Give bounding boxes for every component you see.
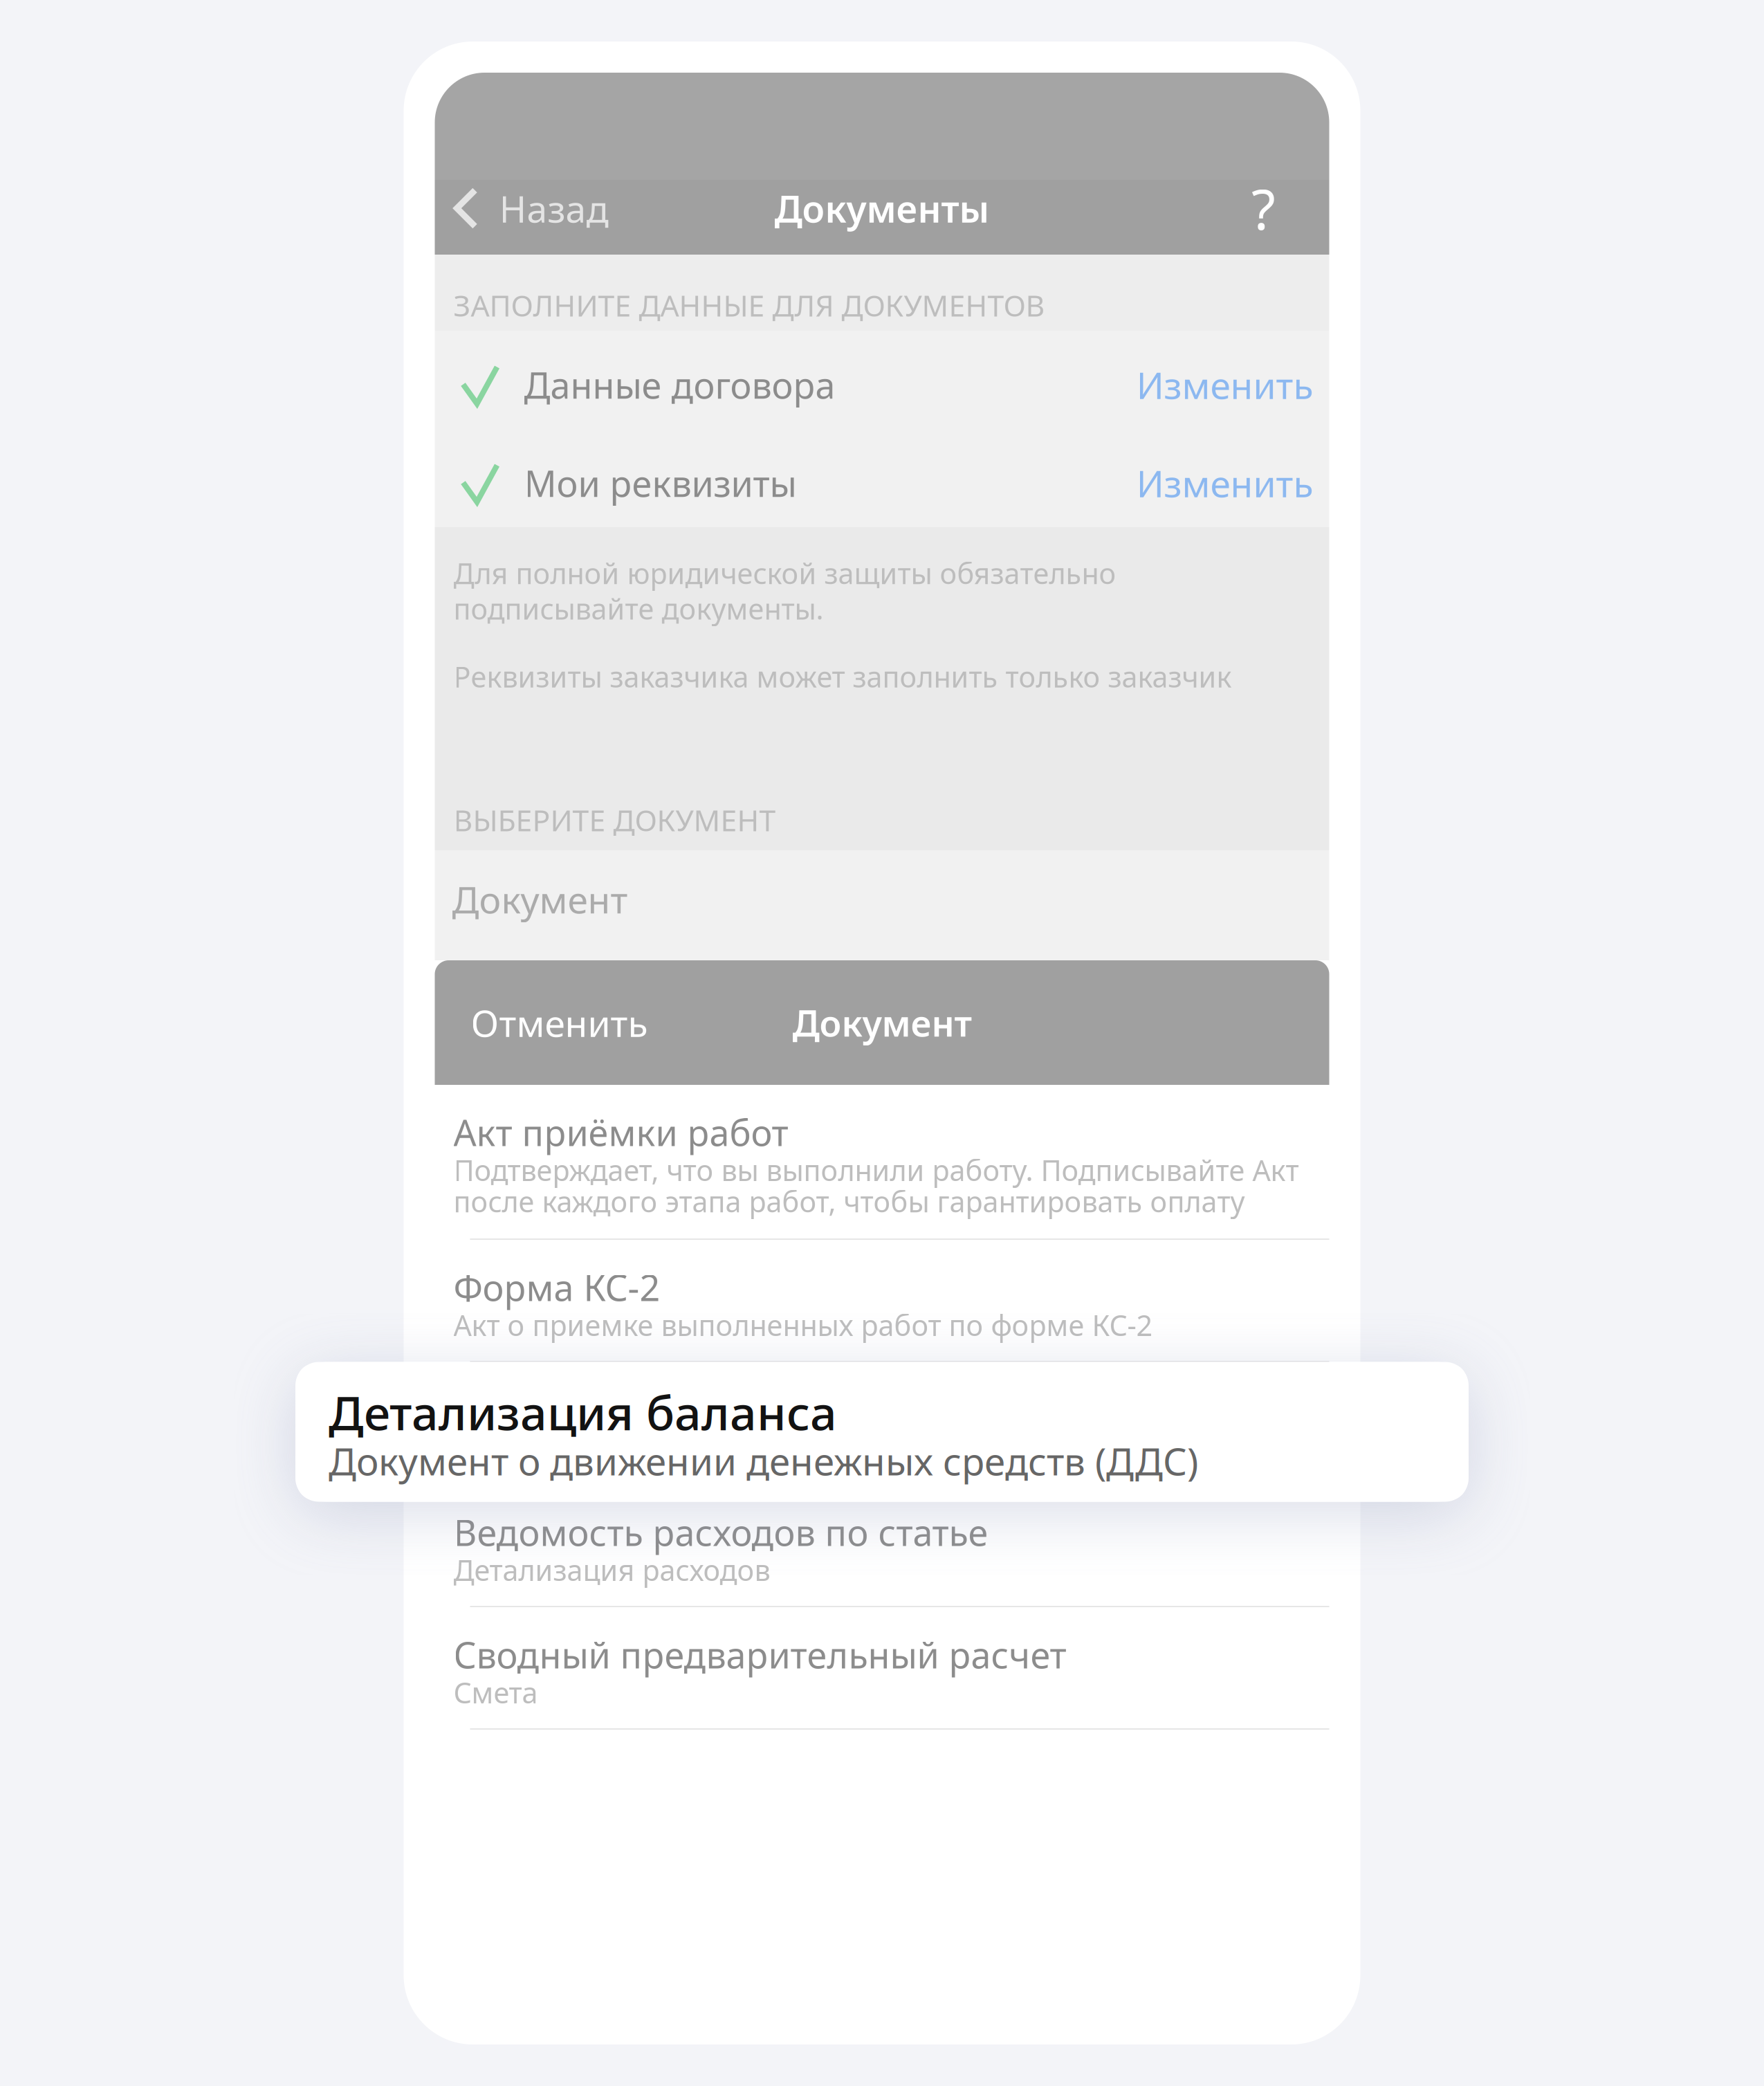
staticText: Детализация расходов [453,1550,770,1589]
button[interactable]: Мои реквизиты [435,429,1329,527]
button[interactable]: Назад [435,171,624,246]
staticText: Смета [453,1673,538,1712]
button[interactable]: Форма КС-2 [435,1240,1329,1362]
staticText: Изменить [1136,458,1313,508]
button[interactable]: Данные договора [435,331,1329,429]
staticText: Назад [499,183,608,233]
staticText: Ведомость расходов по статье [453,1508,988,1557]
staticText: Изменить [1136,360,1313,410]
staticText: Документ [452,874,628,924]
staticText: Данные договора [524,360,835,409]
staticText: Акт о приемке выполненных работ по форме… [453,1305,1153,1344]
staticText: подписывайте документы. [453,589,824,628]
staticText: Отменить [471,997,648,1048]
staticText: Документ о движении денежных средств (ДД… [329,1435,1198,1487]
staticText: Акт приёмки работ [453,1108,788,1157]
staticText: Подтверждает, что вы выполнили работу. П… [453,1150,1299,1189]
staticText: после каждого этапа работ, чтобы гаранти… [453,1182,1245,1221]
staticText: Детализация баланса [329,1380,837,1444]
button[interactable]: Help [1198,171,1329,246]
button[interactable]: Сводный предварительный расчет [435,1607,1329,1730]
staticText: ЗАПОЛНИТЕ ДАННЫЕ ДЛЯ ДОКУМЕНТОВ [453,285,1045,325]
button[interactable]: Ведомость расходов по статье [435,1485,1329,1607]
button[interactable]: Отменить [435,960,676,1085]
staticText: Документ [792,998,972,1047]
staticText: Реквизиты заказчика может заполнить толь… [453,657,1232,696]
staticText: ВЫБЕРИТЕ ДОКУМЕНТ [453,800,776,840]
button[interactable]: Акт приёмки работ [435,1085,1329,1240]
staticText: Документ о движении денежных средств (ДД… [453,1428,1111,1467]
staticText: Для полной юридической защиты обязательн… [453,553,1116,592]
staticText: Документы [774,183,990,233]
button[interactable]: Детализация баланса [435,1362,1329,1485]
staticText: Форма КС-2 [453,1263,660,1312]
staticText: Мои реквизиты [524,458,797,507]
staticText: Сводный предварительный расчет [453,1630,1066,1679]
staticText: ? [1251,171,1276,246]
staticText: Детализация баланса [453,1385,835,1434]
